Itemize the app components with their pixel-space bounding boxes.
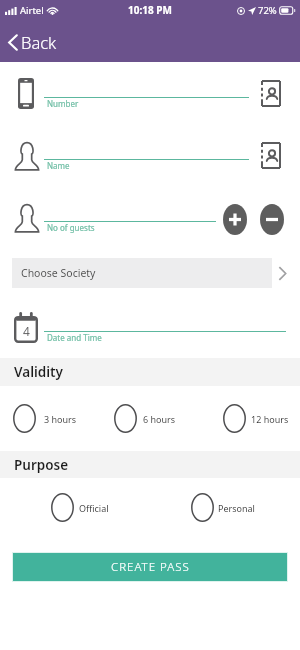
button[interactable]: Choose Society [0, 258, 300, 288]
button[interactable]: Back [8, 29, 57, 55]
staticText: Name [47, 160, 70, 171]
staticText: Personal [218, 502, 255, 514]
button[interactable]: Personal [191, 493, 266, 522]
staticText: 3 hours [44, 413, 77, 425]
button[interactable]: Add guest [223, 204, 247, 235]
staticText: Official [79, 502, 109, 514]
staticText: Validity [14, 363, 63, 381]
button[interactable]: Remove guest [260, 204, 284, 235]
staticText: 10:18 PM [128, 3, 172, 17]
button[interactable]: Choose from contacts [261, 142, 281, 169]
button[interactable]: 3 hours [13, 404, 87, 433]
staticText: 4 [23, 323, 30, 339]
button[interactable]: 6 hours [114, 404, 186, 433]
staticText: No of guests [47, 222, 95, 233]
staticText: Number [47, 98, 79, 109]
staticText: 6 hours [143, 413, 176, 425]
button[interactable]: Official [51, 493, 127, 522]
staticText: Date and Time [47, 332, 102, 343]
staticText: 72% [258, 4, 277, 17]
button[interactable]: Choose from contacts [261, 80, 281, 107]
button[interactable]: Date and Time [44, 331, 286, 347]
button[interactable]: No of guests [44, 221, 216, 237]
button[interactable]: CREATE PASS [13, 553, 287, 581]
staticText: Airtel [20, 4, 44, 17]
staticText: Choose Society [21, 266, 96, 280]
button[interactable]: 12 hours [223, 404, 299, 433]
button[interactable]: Name [44, 159, 249, 175]
staticText: CREATE PASS [111, 559, 190, 575]
staticText: 12 hours [251, 413, 289, 425]
button[interactable]: Number [44, 97, 249, 113]
staticText: Purpose [14, 456, 69, 474]
staticText: Back [21, 31, 57, 53]
